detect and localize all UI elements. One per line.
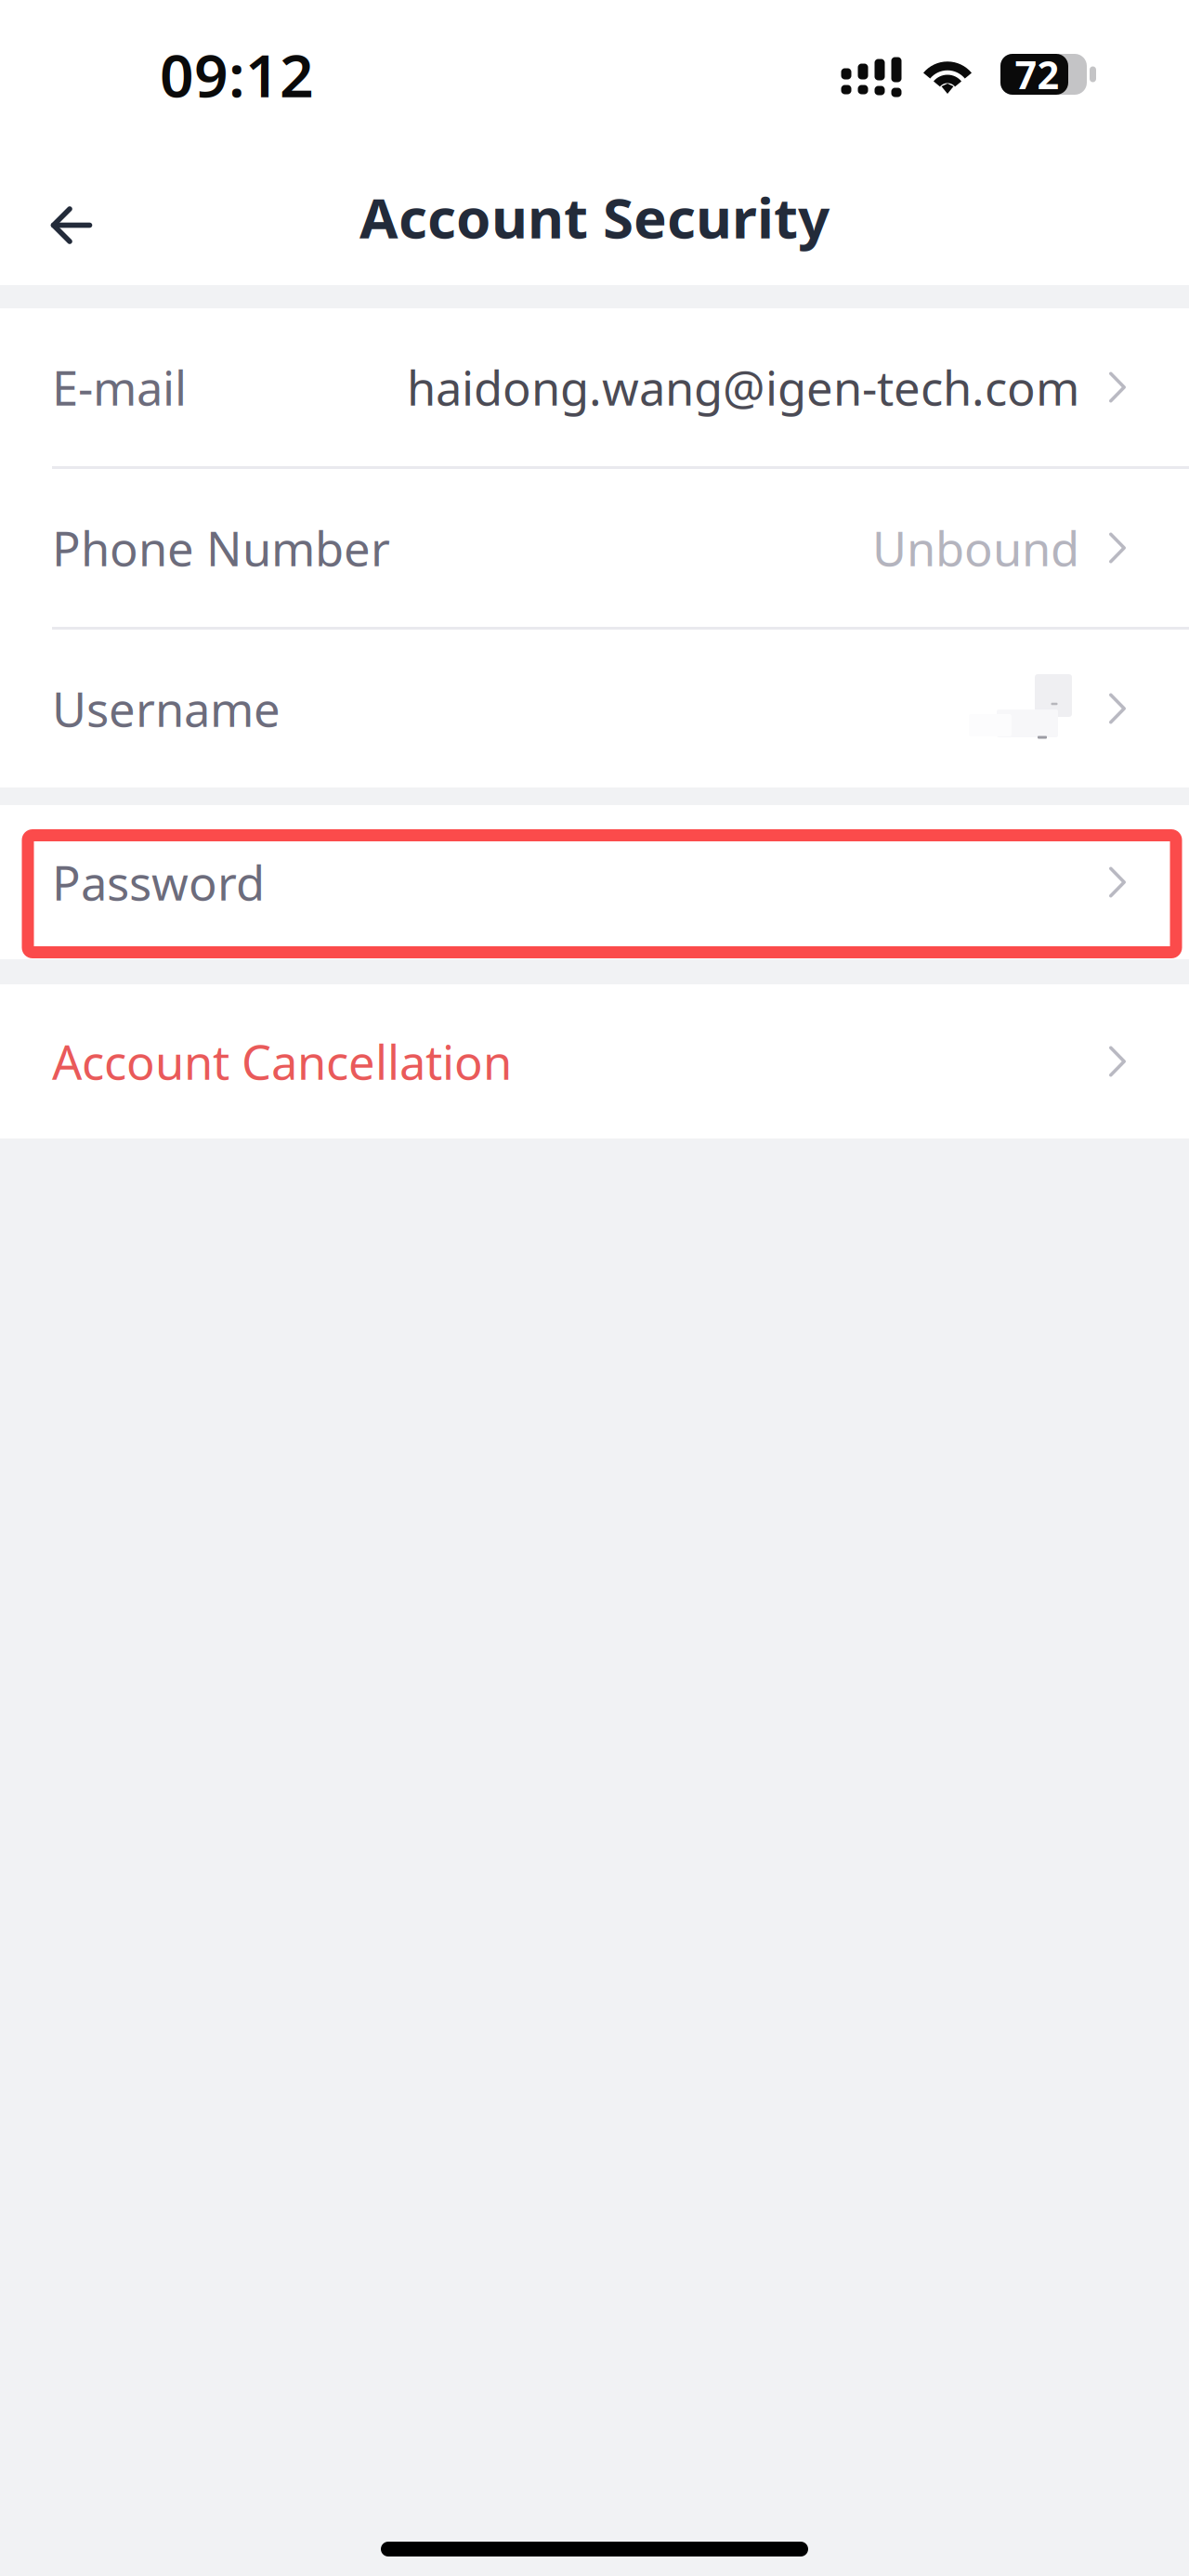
button[interactable]: Phone Number <box>0 469 1189 627</box>
button[interactable]: Account Cancellation <box>0 984 1189 1138</box>
staticText: E-mail <box>52 356 187 419</box>
staticText: Username <box>52 677 281 740</box>
staticText: 09:12 <box>160 35 314 114</box>
button[interactable]: Password <box>0 805 1189 959</box>
staticText: Account Security <box>359 180 830 254</box>
staticText: Account Cancellation <box>52 1030 512 1093</box>
staticText: Password <box>52 851 265 913</box>
staticText: haidong.wang@igen-tech.com <box>407 356 1079 419</box>
staticText: Unbound <box>872 517 1079 579</box>
button[interactable]: Username <box>0 630 1189 787</box>
button[interactable]: Back <box>20 174 123 276</box>
staticText: 72 <box>1015 49 1059 100</box>
button[interactable]: E-mail <box>0 308 1189 466</box>
staticText: Phone Number <box>52 517 390 579</box>
